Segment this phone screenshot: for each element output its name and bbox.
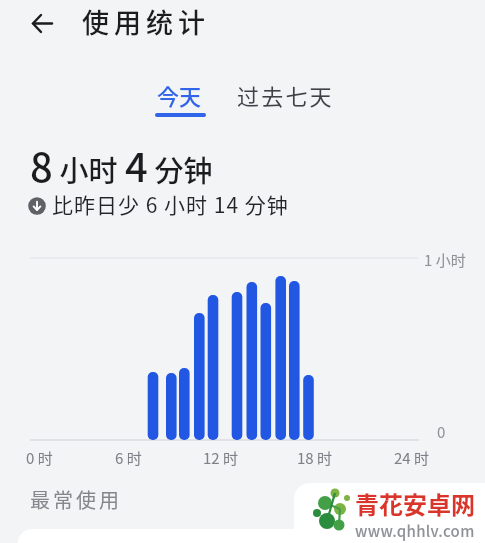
staticText: 8 [30,136,53,194]
staticText: 过去七天 [237,79,334,111]
staticText: 使用统计 [82,2,210,41]
staticText: 青花安卓网 [355,486,475,521]
staticText: 4 [125,136,148,194]
button[interactable]: 过去七天 [234,75,346,117]
staticText: 24 时 [394,447,430,469]
button[interactable]: 今天 [150,75,212,123]
staticText: 小时 [53,148,125,190]
button[interactable]: 青花安卓网 [294,483,485,543]
staticText: 今天 [157,79,202,111]
staticText: 12 时 [203,447,239,469]
staticText: 1 小时 [424,249,466,271]
staticText: 分钟 [148,148,213,190]
staticText: 0 [437,421,446,443]
staticText: 0 时 [26,447,53,469]
button[interactable] [24,6,60,42]
staticText: 6 时 [115,447,142,469]
staticText: 18 时 [297,447,333,469]
staticText: 最常使用 [30,485,122,514]
staticText: 比昨日少 6 小时 14 分钟 [52,189,289,219]
staticText: www.qhhlv.com [355,520,475,542]
